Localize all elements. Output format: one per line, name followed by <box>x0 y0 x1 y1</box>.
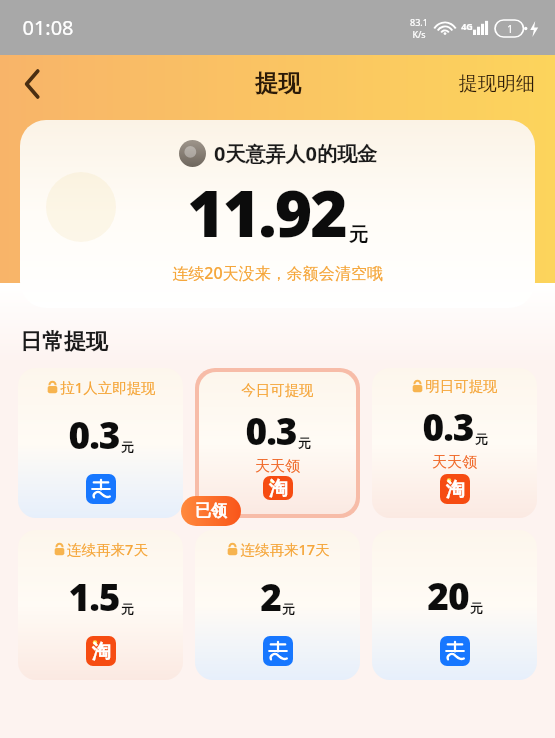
staticText: 元 <box>121 439 134 455</box>
staticText: 0天意弄人0的现金 <box>214 140 377 167</box>
staticText: 元 <box>475 431 488 447</box>
staticText: 已领 <box>195 501 227 521</box>
button[interactable]: 已领 <box>181 496 241 526</box>
button[interactable]: 今日可提现 <box>199 372 356 514</box>
staticText: 元 <box>282 601 295 617</box>
staticText: 元 <box>121 601 134 617</box>
button[interactable]: Back <box>10 61 56 107</box>
button[interactable]: 20 <box>372 530 537 680</box>
button[interactable]: 提现明细 <box>453 66 541 102</box>
staticText: 明日可提现 <box>425 377 498 395</box>
staticText: 4G <box>461 20 473 32</box>
staticText: 元 <box>349 223 368 247</box>
staticText: 淘 <box>269 477 288 500</box>
staticText: 天天领 <box>255 457 300 476</box>
button[interactable]: 连续再来17天 <box>195 530 360 680</box>
staticText: 20 <box>427 570 469 620</box>
button[interactable]: 明日可提现 <box>372 368 537 518</box>
staticText: 提现明细 <box>459 72 535 96</box>
staticText: 连续再来17天 <box>240 539 330 559</box>
staticText: 淘 <box>446 478 465 502</box>
staticText: 拉1人立即提现 <box>60 377 156 397</box>
button[interactable]: 连续再来7天 <box>18 530 183 680</box>
staticText: 0.3 <box>68 409 120 459</box>
staticText: 0.3 <box>245 405 297 455</box>
staticText: 1 <box>507 22 513 36</box>
staticText: 连续再来7天 <box>67 539 148 559</box>
staticText: 天天领 <box>432 453 477 472</box>
staticText: 11.92 <box>187 169 346 256</box>
button[interactable]: 拉1人立即提现 <box>18 368 183 518</box>
staticText: 淘 <box>92 640 111 664</box>
staticText: 元 <box>470 600 483 616</box>
staticText: 01:08 <box>22 14 74 41</box>
staticText: 日常提现 <box>20 328 108 356</box>
staticText: 1.5 <box>68 571 120 621</box>
staticText: 连续20天没来，余额会清空哦 <box>172 262 383 284</box>
button[interactable]: 0天意弄人0的现金 <box>20 120 535 308</box>
staticText: 2 <box>260 571 281 621</box>
staticText: 0.3 <box>422 401 474 451</box>
staticText: 今日可提现 <box>241 381 314 399</box>
staticText: K/s <box>412 28 426 40</box>
staticText: 83.1 <box>410 16 428 28</box>
staticText: 元 <box>298 435 311 451</box>
staticText: 提现 <box>255 69 301 98</box>
